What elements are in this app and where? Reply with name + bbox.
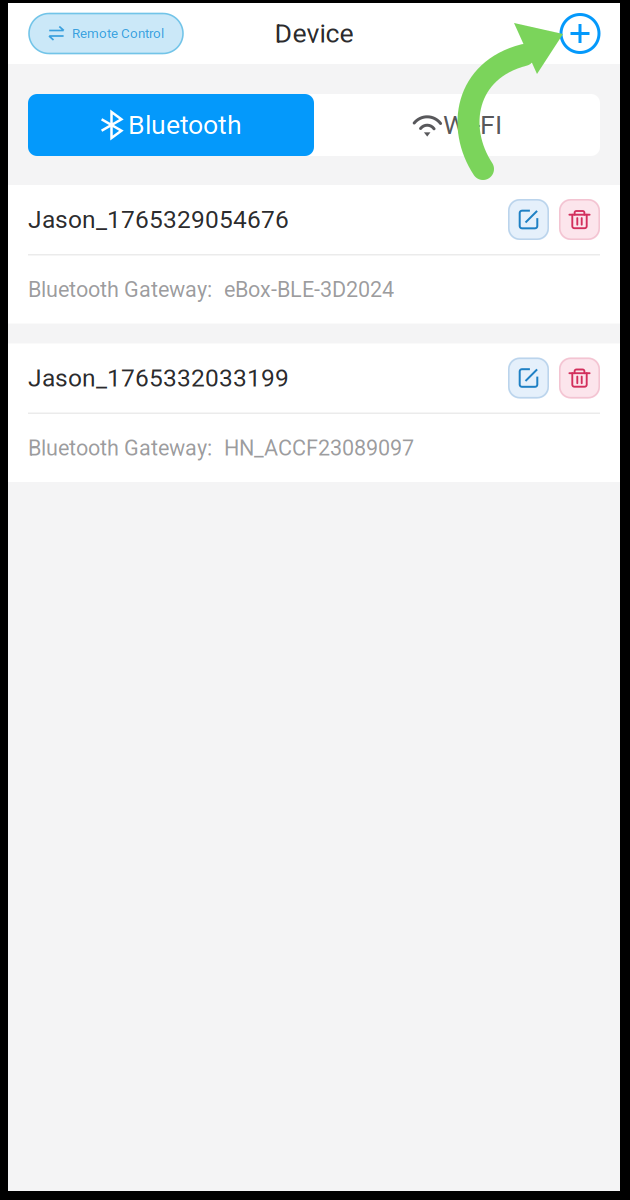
staticText: Jason_1765332033199 (28, 364, 289, 392)
staticText: Device (274, 18, 353, 49)
staticText: HN_ACCF23089097 (224, 435, 414, 461)
button[interactable]: Delete device (559, 199, 600, 240)
staticText: Bluetooth Gateway: (28, 277, 212, 302)
staticText: Wi-FI (443, 109, 502, 141)
staticText: Jason_1765329054676 (28, 205, 289, 234)
staticText: Remote Control (72, 26, 164, 41)
staticText: Bluetooth Gateway: (28, 435, 212, 461)
staticText: eBox-BLE-3D2024 (224, 277, 394, 302)
button[interactable]: Edit device (508, 199, 549, 240)
button[interactable]: Wi-FI (314, 94, 600, 156)
button[interactable]: Remote Control (29, 13, 183, 53)
button[interactable]: Bluetooth (28, 94, 314, 156)
button[interactable]: Delete device (559, 357, 600, 398)
button[interactable]: Edit device (508, 357, 549, 398)
staticText: Bluetooth (128, 109, 242, 141)
button[interactable]: Add device (561, 14, 599, 52)
